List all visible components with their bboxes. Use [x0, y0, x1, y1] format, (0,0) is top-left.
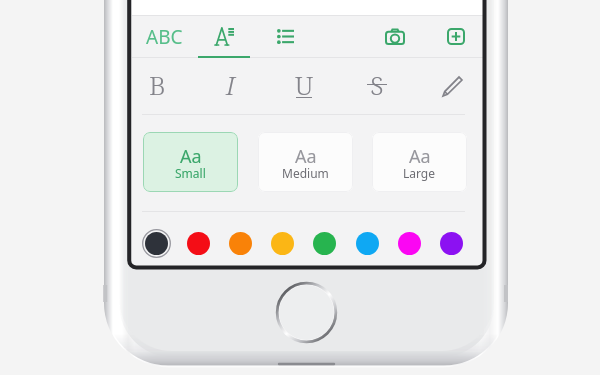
staticText: Small: [175, 165, 206, 181]
button[interactable]: Yellow: [263, 224, 301, 262]
button[interactable]: Red: [179, 224, 217, 262]
staticText: Aa: [180, 144, 202, 169]
staticText: S: [370, 67, 384, 102]
button[interactable]: Black: [137, 224, 175, 262]
button[interactable]: B: [131, 58, 183, 114]
button[interactable]: Bulleted list: [267, 16, 303, 57]
button[interactable]: Magenta: [390, 224, 428, 262]
staticText: Large: [403, 165, 436, 181]
button[interactable]: Aa: [258, 132, 353, 192]
button[interactable]: Aa: [143, 132, 238, 192]
staticText: U: [295, 67, 314, 102]
button[interactable]: Aa: [372, 132, 467, 192]
button[interactable]: Purple: [432, 224, 470, 262]
staticText: Aa: [295, 144, 317, 169]
staticText: Medium: [282, 165, 329, 181]
button[interactable]: Blue: [348, 224, 386, 262]
button[interactable]: Draw: [426, 58, 478, 114]
button[interactable]: Text format: [206, 16, 242, 57]
button[interactable]: S: [351, 58, 403, 114]
staticText: Aa: [409, 144, 431, 169]
button[interactable]: Camera: [377, 16, 413, 57]
button[interactable]: I: [205, 58, 257, 114]
button[interactable]: Green: [305, 224, 343, 262]
staticText: ABC: [146, 24, 183, 50]
staticText: B: [149, 67, 166, 102]
button[interactable]: Orange: [221, 224, 259, 262]
button[interactable]: Add attachment: [438, 16, 474, 57]
button[interactable]: ABC: [142, 16, 186, 57]
staticText: I: [226, 67, 236, 102]
button[interactable]: U: [278, 58, 330, 114]
